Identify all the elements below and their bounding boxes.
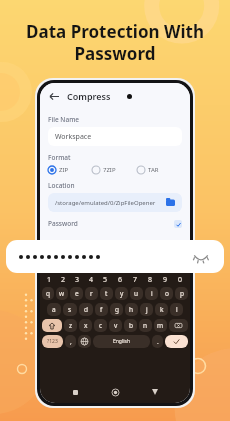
button[interactable]: d (79, 303, 93, 316)
button[interactable]: i (145, 287, 158, 300)
button[interactable]: m (154, 319, 167, 332)
button[interactable]: 6 (113, 275, 128, 284)
button[interactable]: 0 (173, 275, 188, 284)
staticText: h (129, 305, 134, 314)
button[interactable]: Back (47, 89, 62, 104)
staticText: 2 (61, 275, 66, 284)
staticText: Password (48, 219, 78, 228)
button[interactable]: z (64, 319, 77, 332)
button[interactable]: r (85, 287, 98, 300)
staticText: j (146, 305, 148, 314)
staticText: 9 (163, 275, 168, 284)
button[interactable]: Show password (191, 247, 211, 267)
button[interactable]: j (140, 303, 153, 316)
button[interactable]: t (100, 287, 113, 300)
button[interactable]: Back (148, 385, 162, 399)
button[interactable]: o (160, 287, 173, 300)
button[interactable]: n (139, 319, 152, 332)
staticText: 7 (133, 275, 138, 284)
button[interactable]: 2 (56, 275, 70, 284)
button[interactable]: h (125, 303, 138, 316)
button[interactable]: Show password (6, 240, 224, 273)
staticText: k (160, 305, 164, 314)
staticText: TAR (148, 166, 159, 174)
staticText: q (46, 289, 50, 298)
staticText: English (113, 338, 131, 345)
button[interactable]: 3 (70, 275, 84, 284)
staticText: 6 (118, 275, 123, 284)
button[interactable]: g (110, 303, 123, 316)
staticText: f (100, 305, 103, 314)
button[interactable]: w (56, 287, 68, 300)
staticText: Compress (67, 90, 111, 102)
staticText: y (120, 289, 124, 298)
staticText: n (143, 321, 148, 330)
staticText: Location (48, 181, 75, 190)
button[interactable]: English (93, 335, 150, 348)
staticText: e (75, 289, 79, 298)
button[interactable]: , (65, 335, 76, 348)
staticText: s (68, 305, 72, 314)
staticText: i (151, 289, 153, 298)
staticText: g (115, 305, 119, 314)
staticText: t (105, 289, 108, 298)
button[interactable]: Key (169, 319, 188, 332)
staticText: a (52, 305, 56, 314)
button[interactable]: k (155, 303, 168, 316)
button[interactable]: Key (42, 319, 62, 332)
button[interactable]: 9 (158, 275, 173, 284)
button[interactable]: 8 (143, 275, 158, 284)
button[interactable]: 1 (42, 275, 56, 284)
button[interactable]: b (124, 319, 137, 332)
staticText: /storage/emulated/0/ZipFileOpener (55, 199, 156, 207)
button[interactable]: /storage/emulated/0/ZipFileOpener (48, 193, 182, 212)
button[interactable]: TAR (137, 166, 182, 174)
staticText: 3 (75, 275, 80, 284)
button[interactable]: . (152, 335, 163, 348)
button[interactable]: q (42, 287, 54, 300)
staticText: b (129, 321, 133, 330)
staticText: File Name (48, 115, 80, 124)
button[interactable]: v (109, 319, 122, 332)
button[interactable]: l (170, 303, 183, 316)
button[interactable]: e (70, 287, 83, 300)
staticText: m (157, 321, 164, 330)
button[interactable]: 4 (84, 275, 98, 284)
staticText: v (114, 321, 118, 330)
staticText: 0 (178, 275, 183, 284)
button[interactable]: Password enabled (174, 220, 182, 228)
staticText: o (165, 289, 169, 298)
staticText: d (84, 305, 88, 314)
button[interactable]: Workspace (48, 127, 182, 146)
button[interactable]: p (175, 287, 188, 300)
staticText: , (70, 337, 72, 346)
staticText: u (134, 289, 139, 298)
staticText: r (90, 289, 93, 298)
button[interactable]: u (130, 287, 143, 300)
button[interactable]: 7ZIP (92, 166, 137, 174)
staticText: l (176, 305, 178, 314)
staticText: x (84, 321, 88, 330)
button[interactable]: c (94, 319, 107, 332)
staticText: ZIP (59, 166, 69, 174)
button[interactable]: Home (108, 385, 122, 399)
button[interactable]: a (47, 303, 61, 316)
staticText: Format (48, 153, 71, 162)
button[interactable]: s (63, 303, 77, 316)
staticText: . (157, 337, 159, 346)
staticText: 1 (47, 275, 52, 284)
staticText: 8 (148, 275, 153, 284)
staticText: Data Protection With Password (26, 20, 204, 65)
staticText: w (59, 289, 65, 298)
button[interactable]: f (95, 303, 108, 316)
button[interactable]: 5 (98, 275, 113, 284)
button[interactable]: y (115, 287, 128, 300)
button[interactable]: x (79, 319, 92, 332)
button[interactable]: 7 (128, 275, 143, 284)
button[interactable]: Key (78, 335, 91, 348)
button[interactable]: Enter (165, 335, 188, 348)
button[interactable]: ?123 (42, 335, 63, 348)
staticText: p (180, 289, 184, 298)
button[interactable]: Recents (68, 385, 82, 399)
button[interactable]: ZIP (48, 166, 92, 174)
